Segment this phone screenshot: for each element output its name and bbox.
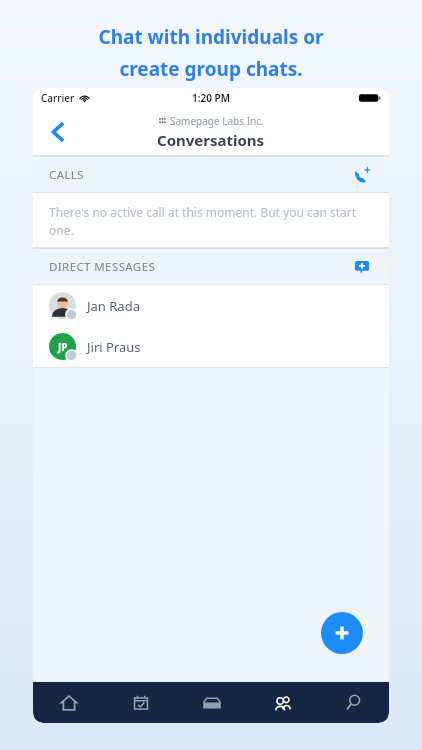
staticText: There's no active call at this moment. B… (49, 204, 373, 239)
button[interactable]: People (247, 682, 318, 723)
button[interactable]: Back (41, 115, 75, 149)
staticText: Jiri Praus (87, 338, 141, 356)
staticText: 1:20 PM (192, 91, 230, 105)
button[interactable]: Search (318, 682, 389, 723)
button[interactable]: Home (33, 682, 105, 723)
button[interactable]: There's no active call at this moment. B… (33, 193, 389, 248)
button[interactable]: Start a call (347, 160, 377, 190)
button[interactable]: JP (33, 326, 389, 367)
staticText: Conversations (157, 130, 265, 150)
staticText: JP (58, 340, 68, 354)
staticText: Chat with individuals or (98, 24, 324, 50)
button[interactable]: New message (347, 252, 377, 282)
staticText: DIRECT MESSAGES (49, 259, 156, 275)
staticText: Carrier (41, 91, 75, 105)
staticText: Jan Rada (87, 297, 140, 315)
button[interactable]: Calendar (105, 682, 176, 723)
button[interactable]: New conversation (321, 612, 363, 654)
staticText: create group chats. (119, 56, 303, 82)
staticText: CALLS (49, 167, 84, 183)
button[interactable]: Inbox (176, 682, 247, 723)
button[interactable]: Jan Rada (33, 285, 389, 326)
staticText: Samepage Labs Inc. (170, 114, 264, 128)
